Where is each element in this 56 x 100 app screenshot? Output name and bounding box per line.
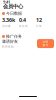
staticText: 9:41 (3, 0, 10, 5)
staticText: 推广任务 (6, 34, 22, 39)
staticText: 访问量 (2, 24, 11, 28)
staticText: 0.4 (19, 16, 26, 23)
staticText: 转化率 (19, 24, 28, 28)
staticText: 邀请好友 (2, 39, 18, 44)
staticText: 立即 参与 (42, 40, 48, 47)
staticText: 今日数据 (6, 11, 22, 16)
staticText: 获得奖励 (2, 45, 14, 48)
staticText: 会员中心 (3, 3, 23, 10)
staticText: 3.36k (2, 16, 15, 23)
staticText: 12 (36, 16, 42, 23)
button[interactable]: 立即 参与 (37, 39, 54, 48)
staticText: 订单 (36, 24, 42, 28)
